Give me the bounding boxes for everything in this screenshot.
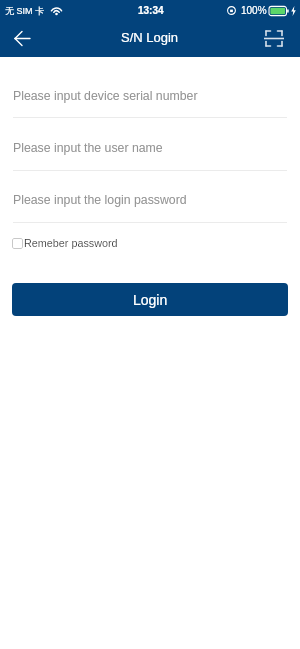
button[interactable]: Login — [12, 283, 288, 316]
staticText: 无 SIM 卡 — [5, 5, 45, 16]
staticText: 13:34 — [138, 5, 164, 16]
button[interactable]: Please input the login password — [13, 193, 187, 207]
staticText: Remeber password — [24, 237, 118, 249]
staticText: Login — [133, 292, 168, 308]
button[interactable]: Please input the user name — [13, 141, 163, 155]
staticText: S/N Login — [121, 30, 179, 45]
button[interactable] — [0, 20, 44, 57]
button[interactable] — [248, 20, 300, 57]
button[interactable]: Remeber password — [12, 237, 118, 249]
staticText: 100% — [241, 5, 267, 16]
button[interactable]: Please input device serial number — [13, 89, 198, 103]
